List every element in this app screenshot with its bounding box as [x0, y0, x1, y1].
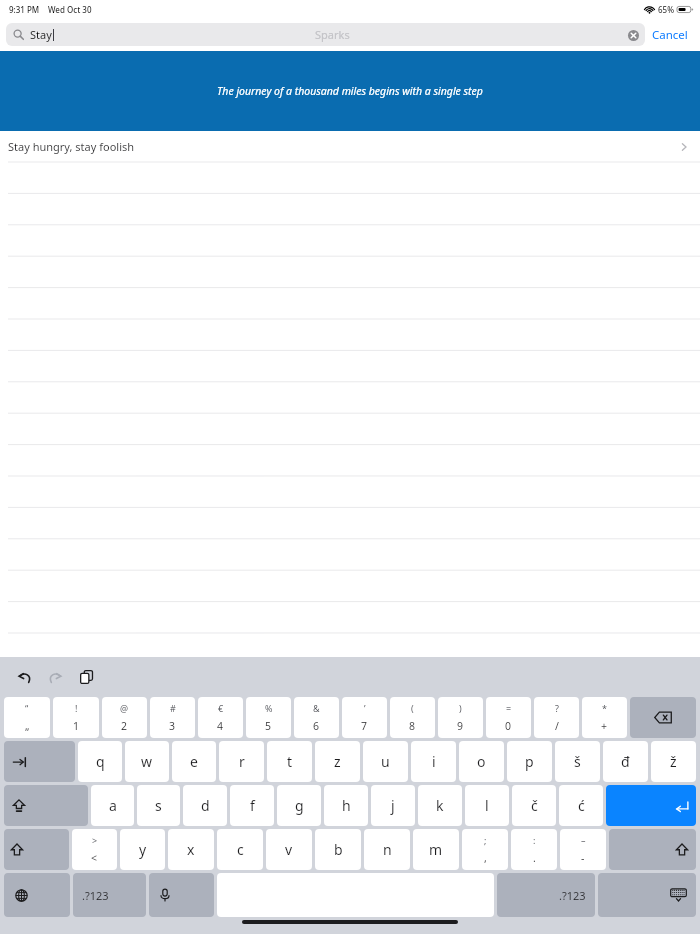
button[interactable]: d: [183, 785, 227, 826]
button[interactable]: g: [277, 785, 321, 826]
button[interactable]: Return: [606, 785, 696, 826]
staticText: l: [485, 796, 489, 815]
button[interactable]: Dictate: [149, 873, 214, 917]
button[interactable]: Numbers and symbols: [497, 873, 595, 917]
button[interactable]: “: [4, 697, 50, 738]
button[interactable]: v: [266, 829, 312, 870]
staticText: č: [531, 796, 538, 815]
button[interactable]: Paste: [73, 664, 99, 690]
button[interactable]: Hide keyboard: [598, 873, 696, 917]
staticText: (: [411, 702, 414, 714]
button[interactable]: :: [511, 829, 557, 870]
staticText: +: [601, 719, 608, 733]
staticText: Sparks: [315, 27, 350, 42]
button[interactable]: z: [315, 741, 360, 782]
staticText: s: [155, 796, 162, 815]
button[interactable]: n: [364, 829, 410, 870]
button[interactable]: !: [53, 697, 99, 738]
button[interactable]: &: [294, 697, 339, 738]
button[interactable]: ć: [559, 785, 603, 826]
button[interactable]: e: [172, 741, 216, 782]
button[interactable]: =: [486, 697, 531, 738]
button[interactable]: Undo: [11, 664, 37, 690]
button[interactable]: Shift: [609, 829, 696, 870]
staticText: @: [120, 702, 129, 714]
button[interactable]: >: [72, 829, 117, 870]
button[interactable]: (: [390, 697, 435, 738]
button[interactable]: Delete: [630, 697, 696, 738]
staticText: „: [25, 719, 30, 733]
staticText: b: [334, 840, 343, 859]
button[interactable]: a: [91, 785, 134, 826]
button[interactable]: ’: [342, 697, 387, 738]
button[interactable]: *: [582, 697, 627, 738]
staticText: &: [313, 702, 320, 714]
button[interactable]: c: [217, 829, 263, 870]
staticText: ž: [670, 752, 677, 771]
staticText: Wed Oct 30: [48, 4, 92, 15]
button[interactable]: l: [465, 785, 509, 826]
button[interactable]: Next keyboard: [4, 873, 70, 917]
button[interactable]: u: [363, 741, 408, 782]
staticText: 7: [361, 719, 368, 733]
button[interactable]: t: [267, 741, 312, 782]
button[interactable]: Stay: [6, 23, 645, 46]
staticText: y: [139, 840, 147, 859]
button[interactable]: Caps lock: [4, 785, 88, 826]
button[interactable]: ?: [534, 697, 579, 738]
staticText: o: [477, 752, 486, 771]
button[interactable]: Shift: [4, 829, 69, 870]
button[interactable]: r: [219, 741, 264, 782]
button[interactable]: p: [507, 741, 552, 782]
staticText: v: [285, 840, 293, 859]
staticText: 9:31 PM: [9, 4, 40, 15]
button[interactable]: ): [438, 697, 483, 738]
staticText: 8: [409, 719, 416, 733]
staticText: š: [574, 752, 581, 771]
button[interactable]: h: [324, 785, 368, 826]
button[interactable]: Numbers and symbols: [73, 873, 146, 917]
button[interactable]: ;: [462, 829, 508, 870]
staticText: Cancel: [652, 27, 688, 43]
button[interactable]: đ: [603, 741, 648, 782]
button[interactable]: j: [371, 785, 415, 826]
staticText: 1: [73, 719, 80, 733]
button[interactable]: ž: [651, 741, 696, 782]
button[interactable]: b: [315, 829, 361, 870]
staticText: c: [237, 840, 244, 859]
button[interactable]: s: [137, 785, 180, 826]
button[interactable]: %: [246, 697, 291, 738]
staticText: %: [265, 702, 273, 714]
button[interactable]: €: [198, 697, 243, 738]
button[interactable]: Redo: [42, 664, 68, 690]
button[interactable]: Cancel: [645, 22, 695, 48]
button[interactable]: f: [230, 785, 274, 826]
button[interactable]: m: [413, 829, 459, 870]
button[interactable]: š: [555, 741, 600, 782]
staticText: t: [287, 752, 293, 771]
button[interactable]: q: [78, 741, 122, 782]
staticText: 5: [265, 719, 272, 733]
button[interactable]: w: [125, 741, 169, 782]
staticText: *: [602, 702, 607, 714]
staticText: r: [239, 752, 245, 771]
button[interactable]: –: [560, 829, 606, 870]
staticText: a: [109, 796, 117, 815]
button[interactable]: Clear text: [626, 28, 640, 42]
button[interactable]: Stay hungry, stay foolish: [0, 131, 700, 162]
staticText: The journey of a thousand miles begins w…: [217, 84, 483, 98]
button[interactable]: o: [459, 741, 504, 782]
button[interactable]: y: [120, 829, 165, 870]
button[interactable]: Tab: [4, 741, 75, 782]
staticText: g: [295, 796, 304, 815]
staticText: -: [581, 851, 585, 865]
button[interactable]: @: [102, 697, 147, 738]
staticText: u: [381, 752, 390, 771]
button[interactable]: k: [418, 785, 462, 826]
button[interactable]: x: [168, 829, 214, 870]
button[interactable]: i: [411, 741, 456, 782]
staticText: ,: [484, 851, 487, 865]
button[interactable]: č: [512, 785, 556, 826]
button[interactable]: #: [150, 697, 195, 738]
